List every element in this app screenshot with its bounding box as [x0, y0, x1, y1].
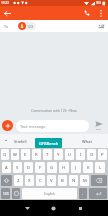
button[interactable]: F [35, 162, 45, 173]
button[interactable]: K [83, 162, 93, 173]
button[interactable]: B [58, 175, 67, 186]
button[interactable]: Back [14, 200, 40, 216]
staticText: What [82, 139, 92, 144]
button[interactable]: X [25, 175, 34, 186]
button[interactable]: A [2, 162, 11, 173]
button[interactable]: Shift [1, 175, 12, 186]
button[interactable]: M [80, 175, 89, 186]
staticText: . [82, 191, 84, 196]
staticText: GFXBench [39, 141, 59, 146]
button[interactable]: Stiefell [11, 134, 30, 148]
button[interactable]: What [66, 134, 108, 148]
button[interactable]: L [95, 162, 105, 173]
staticText: SMS [96, 127, 101, 130]
button[interactable]: 123 [18, 22, 36, 30]
button[interactable]: Q [1, 149, 9, 160]
button[interactable]: I [76, 149, 85, 160]
button[interactable]: Recents [67, 200, 94, 216]
button[interactable]: S [13, 162, 22, 173]
staticText: Stiefell [14, 139, 27, 144]
button[interactable]: Back [0, 6, 14, 20]
button[interactable]: R [32, 149, 41, 160]
staticText: S [16, 165, 19, 171]
staticText: L [99, 165, 102, 171]
staticText: N [72, 178, 76, 184]
staticText: D [27, 165, 31, 171]
button[interactable]: U [65, 149, 74, 160]
staticText: M [83, 178, 87, 184]
staticText: To [4, 24, 8, 29]
staticText: V [50, 178, 53, 184]
staticText: G [50, 165, 54, 171]
button[interactable]: H [59, 162, 69, 173]
button[interactable]: More options [94, 6, 108, 20]
button[interactable]: G [47, 162, 57, 173]
button[interactable]: Add attachment [2, 120, 13, 131]
staticText: B [61, 178, 64, 184]
button[interactable]: Call [80, 6, 94, 20]
button[interactable]: N [69, 175, 78, 186]
staticText: T [46, 152, 49, 158]
staticText: O [90, 152, 94, 158]
staticText: 123 [27, 24, 34, 29]
button[interactable]: T [43, 149, 52, 160]
button[interactable]: P [98, 149, 107, 160]
staticText: English [44, 192, 55, 196]
staticText: Q [3, 152, 7, 158]
button[interactable]: Emoji [12, 188, 20, 199]
button[interactable]: D [24, 162, 33, 173]
staticText: Conversation with 123 • New [31, 108, 77, 113]
button[interactable]: O [87, 149, 96, 160]
staticText: A [5, 165, 8, 171]
button[interactable]: Send SMS [89, 121, 108, 130]
staticText: C [39, 178, 42, 184]
staticText: W [13, 152, 17, 158]
staticText: J [75, 165, 77, 171]
staticText: P [101, 152, 104, 158]
staticText: Z [17, 178, 20, 184]
button[interactable]: Numbers [1, 188, 10, 199]
button[interactable]: E [21, 149, 30, 160]
staticText: K [87, 165, 90, 171]
button[interactable]: V [47, 175, 56, 186]
button[interactable]: Enter [89, 188, 107, 199]
staticText: Y [57, 152, 60, 158]
staticText: U [68, 152, 72, 158]
button[interactable]: Z [14, 175, 23, 186]
button[interactable]: J [71, 162, 81, 173]
staticText: H [62, 165, 66, 171]
button[interactable]: Backspace [91, 175, 107, 186]
button[interactable]: Choose contact [95, 21, 106, 32]
staticText: R [35, 152, 38, 158]
button[interactable]: Home [40, 200, 67, 216]
staticText: I [80, 152, 82, 158]
staticText: F [39, 165, 42, 171]
button[interactable]: GFXBench [30, 134, 66, 148]
staticText: Text message [20, 124, 46, 129]
button[interactable]: Voice input [0, 134, 11, 148]
staticText: X [28, 178, 31, 184]
button[interactable]: Y [54, 149, 63, 160]
button[interactable]: English [22, 188, 77, 199]
staticText: E [24, 152, 27, 158]
button[interactable]: Text message [16, 120, 89, 132]
button[interactable]: Period [79, 188, 87, 199]
button[interactable]: C [36, 175, 45, 186]
button[interactable]: W [11, 149, 19, 160]
staticText: 123 [3, 192, 9, 196]
staticText: 98% [96, 1, 102, 5]
staticText: 10:23 [1, 1, 10, 5]
